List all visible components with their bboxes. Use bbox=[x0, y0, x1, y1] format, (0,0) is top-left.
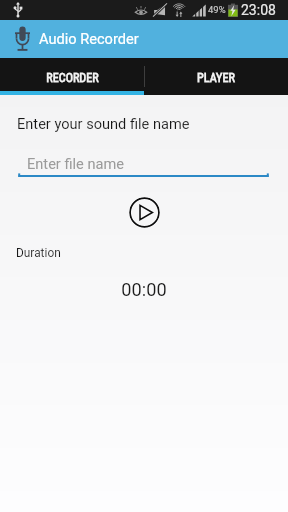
staticText: Audio Recorder bbox=[39, 30, 139, 47]
button[interactable]: RECORDER bbox=[0, 58, 144, 91]
staticText: Enter your sound file name bbox=[17, 115, 190, 132]
staticText: Duration bbox=[16, 246, 61, 260]
staticText: 49% bbox=[208, 4, 226, 15]
staticText: 00:00 bbox=[0, 279, 288, 300]
button[interactable]: PLAYER bbox=[144, 58, 288, 91]
button[interactable]: Enter file name bbox=[18, 147, 269, 178]
staticText: RECORDER bbox=[46, 71, 99, 85]
staticText: PLAYER bbox=[197, 71, 235, 85]
button[interactable]: Start recording bbox=[129, 197, 160, 228]
staticText: Enter file name bbox=[27, 155, 124, 172]
staticText: 23:08 bbox=[241, 2, 276, 18]
